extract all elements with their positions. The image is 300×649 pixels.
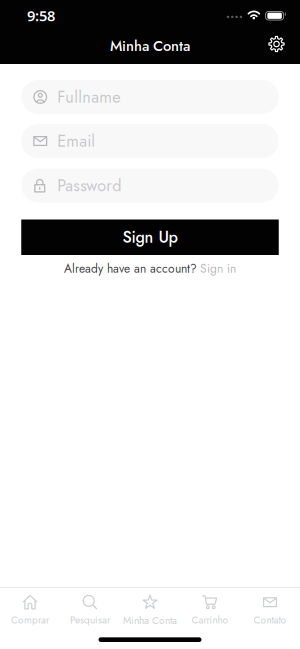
button[interactable]: Pesquisar bbox=[60, 594, 120, 628]
button[interactable]: Contato bbox=[240, 594, 300, 628]
staticText: Fullname bbox=[57, 85, 120, 109]
button[interactable]: Sign Up bbox=[21, 219, 279, 255]
staticText: Pesquisar bbox=[70, 613, 110, 627]
staticText: Email bbox=[57, 129, 95, 153]
button[interactable]: Settings bbox=[268, 36, 300, 56]
staticText: Sign in bbox=[200, 260, 236, 277]
staticText: Contato bbox=[253, 613, 286, 627]
staticText: Carrinho bbox=[191, 613, 228, 627]
button[interactable]: Fullname bbox=[21, 80, 279, 114]
button[interactable]: Carrinho bbox=[180, 594, 240, 628]
button[interactable]: Password bbox=[21, 168, 279, 202]
staticText: Password bbox=[57, 174, 121, 197]
staticText: 9:58 bbox=[27, 6, 55, 25]
button[interactable]: Comprar bbox=[0, 594, 60, 628]
staticText: Already have an account? bbox=[64, 260, 197, 277]
staticText: Minha Conta bbox=[110, 35, 190, 57]
button[interactable]: Minha Conta bbox=[120, 594, 180, 628]
staticText: Comprar bbox=[11, 613, 49, 627]
button[interactable]: Email bbox=[21, 124, 279, 158]
button[interactable]: Already have an account? bbox=[64, 260, 236, 277]
staticText: Minha Conta bbox=[123, 613, 177, 628]
staticText: Sign Up bbox=[122, 226, 177, 249]
